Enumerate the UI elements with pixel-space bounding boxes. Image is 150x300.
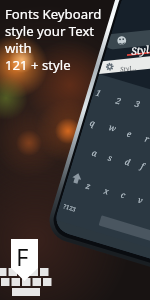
staticText: d [123,155,132,168]
staticText: 1 [94,86,103,99]
staticText: F [16,240,29,273]
staticText: a [90,146,99,159]
staticText: ?123 [62,202,77,214]
staticText: 3 [133,97,142,110]
staticText: e [125,127,134,140]
staticText: Fonts Keyboard style your Text with 121 … [5,5,102,74]
staticText: w [107,121,118,135]
staticText: c [119,188,128,201]
staticText: z [84,179,93,192]
staticText: s [106,152,114,164]
staticText: Styl... [120,63,137,74]
staticText: q [88,116,97,129]
button[interactable]: Fonts Keyboard app icon [2,236,54,296]
staticText: r [143,133,150,145]
staticText: f [139,160,146,172]
staticText: x [102,184,111,197]
staticText: Styl [130,42,150,58]
staticText: 2 [114,94,123,107]
staticText: v [136,193,145,206]
